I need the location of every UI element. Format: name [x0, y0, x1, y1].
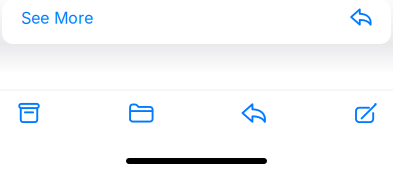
- button[interactable]: Compose: [344, 91, 388, 135]
- button[interactable]: See More: [2, 4, 105, 32]
- staticText: See More: [21, 8, 93, 28]
- button[interactable]: Move to folder: [119, 91, 163, 135]
- button[interactable]: Reply: [232, 91, 276, 135]
- button[interactable]: Archive: [7, 91, 51, 135]
- button[interactable]: Reply: [338, 8, 391, 27]
